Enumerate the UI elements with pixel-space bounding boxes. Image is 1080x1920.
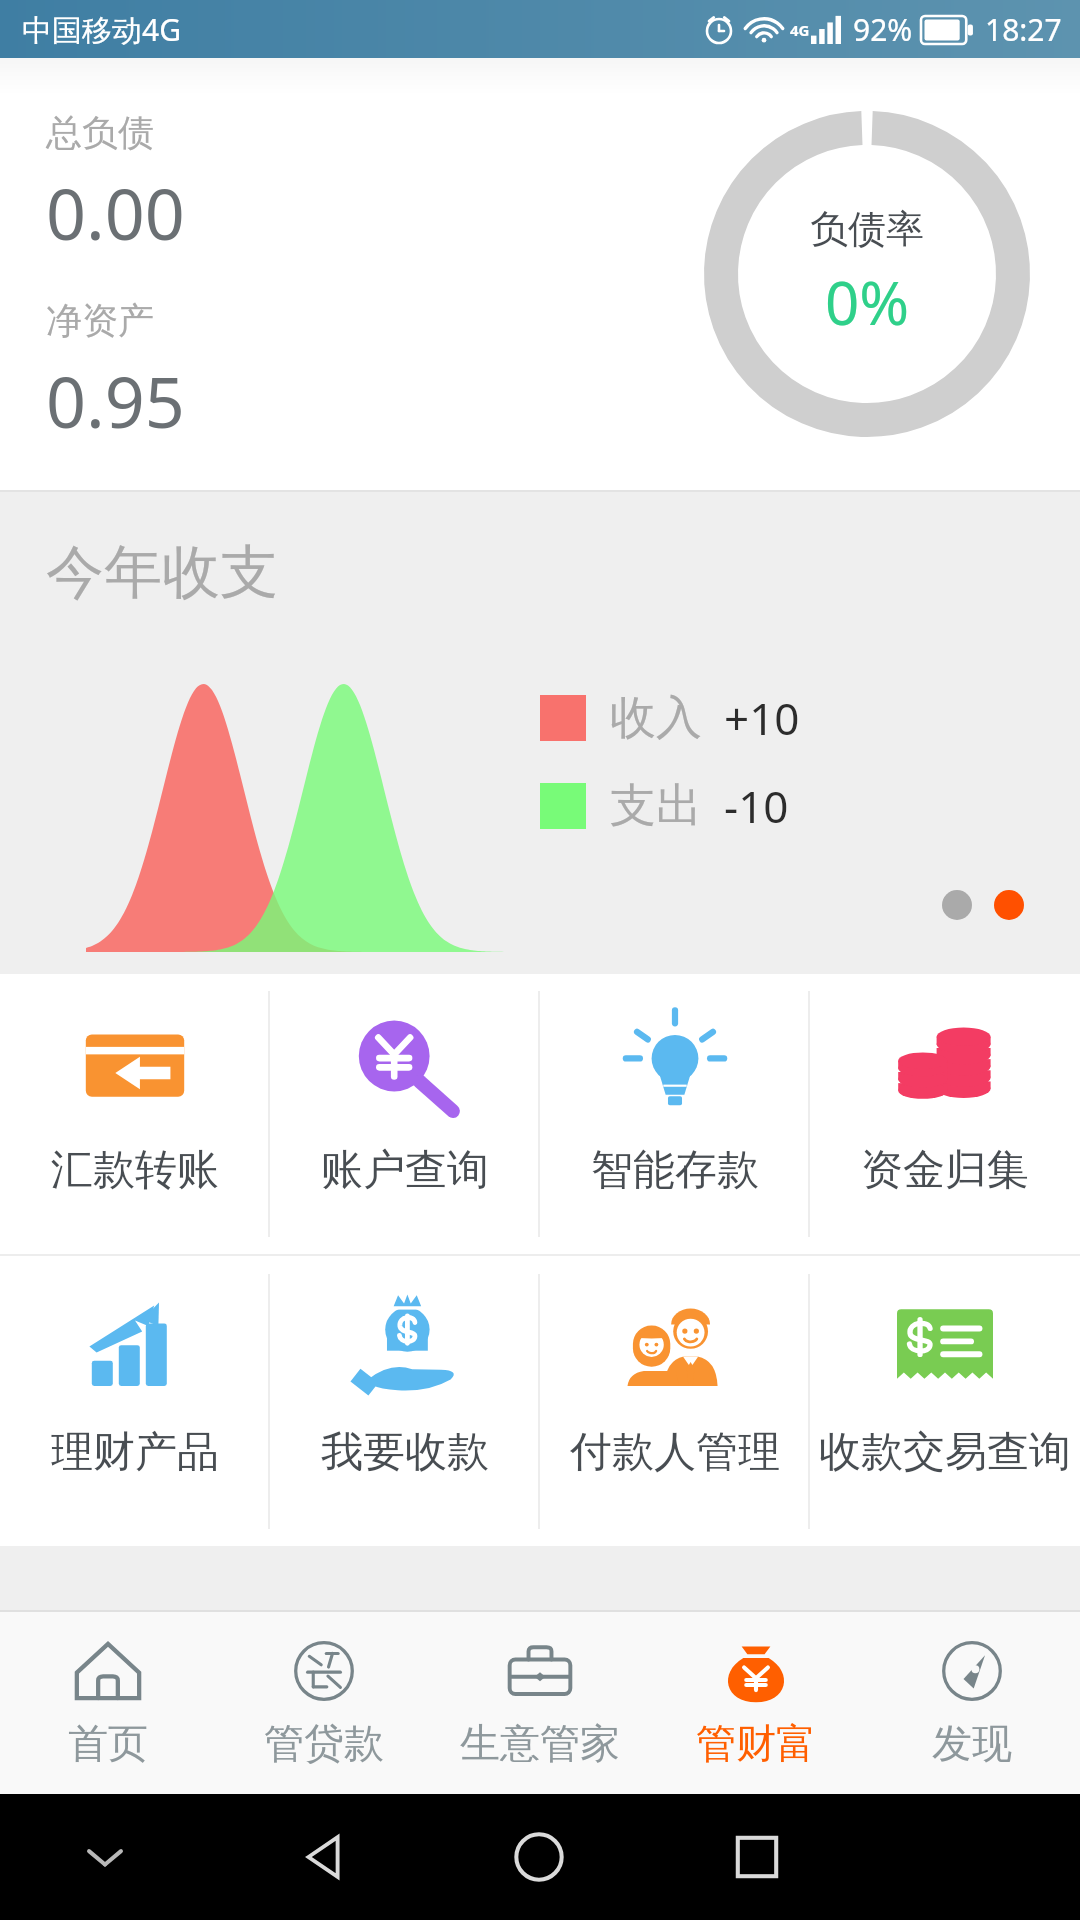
- staticText: 生意管家: [460, 1718, 620, 1768]
- staticText: -10: [724, 776, 789, 836]
- button[interactable]: Hide keyboard: [40, 1794, 170, 1920]
- staticText: 今年收支: [46, 536, 278, 609]
- button[interactable]: 管贷款: [216, 1612, 432, 1794]
- staticText: 0%: [825, 261, 910, 343]
- button[interactable]: 首页: [0, 1612, 216, 1794]
- staticText: 汇款转账: [51, 1144, 219, 1197]
- button[interactable]: 我要收款: [270, 1256, 540, 1546]
- button[interactable]: 收款交易查询: [810, 1256, 1080, 1546]
- staticText: 18:27: [985, 9, 1062, 50]
- staticText: 中国移动4G: [22, 9, 181, 50]
- staticText: 净资产: [46, 298, 154, 343]
- button[interactable]: 资金归集: [810, 974, 1080, 1254]
- staticText: +10: [724, 688, 800, 748]
- staticText: 0.95: [46, 353, 185, 448]
- button[interactable]: Recent apps: [692, 1794, 822, 1920]
- staticText: 付款人管理: [570, 1426, 780, 1479]
- button[interactable]: 理财产品: [0, 1256, 270, 1546]
- staticText: 资金归集: [861, 1144, 1029, 1197]
- staticText: 收款交易查询: [819, 1426, 1071, 1479]
- staticText: 理财产品: [51, 1426, 219, 1479]
- button[interactable]: 智能存款: [540, 974, 810, 1254]
- button[interactable]: Home: [474, 1794, 604, 1920]
- staticText: 发现: [932, 1718, 1012, 1768]
- staticText: 管财富: [696, 1718, 816, 1768]
- staticText: 管贷款: [264, 1718, 384, 1768]
- button[interactable]: 账户查询: [270, 974, 540, 1254]
- staticText: 支出: [610, 777, 702, 835]
- staticText: 智能存款: [591, 1144, 759, 1197]
- button[interactable]: 管财富: [648, 1612, 864, 1794]
- staticText: 负债率: [810, 205, 924, 253]
- button[interactable]: 发现: [864, 1612, 1080, 1794]
- staticText: 4G: [790, 20, 810, 40]
- staticText: 92%: [853, 9, 913, 50]
- button[interactable]: 生意管家: [432, 1612, 648, 1794]
- staticText: 账户查询: [321, 1144, 489, 1197]
- staticText: 首页: [68, 1718, 148, 1768]
- button[interactable]: Back: [257, 1794, 387, 1920]
- staticText: 0.00: [46, 165, 185, 260]
- button[interactable]: 付款人管理: [540, 1256, 810, 1546]
- staticText: 总负债: [46, 110, 154, 155]
- staticText: 收入: [610, 689, 702, 747]
- staticText: 我要收款: [321, 1426, 489, 1479]
- button[interactable]: 汇款转账: [0, 974, 270, 1254]
